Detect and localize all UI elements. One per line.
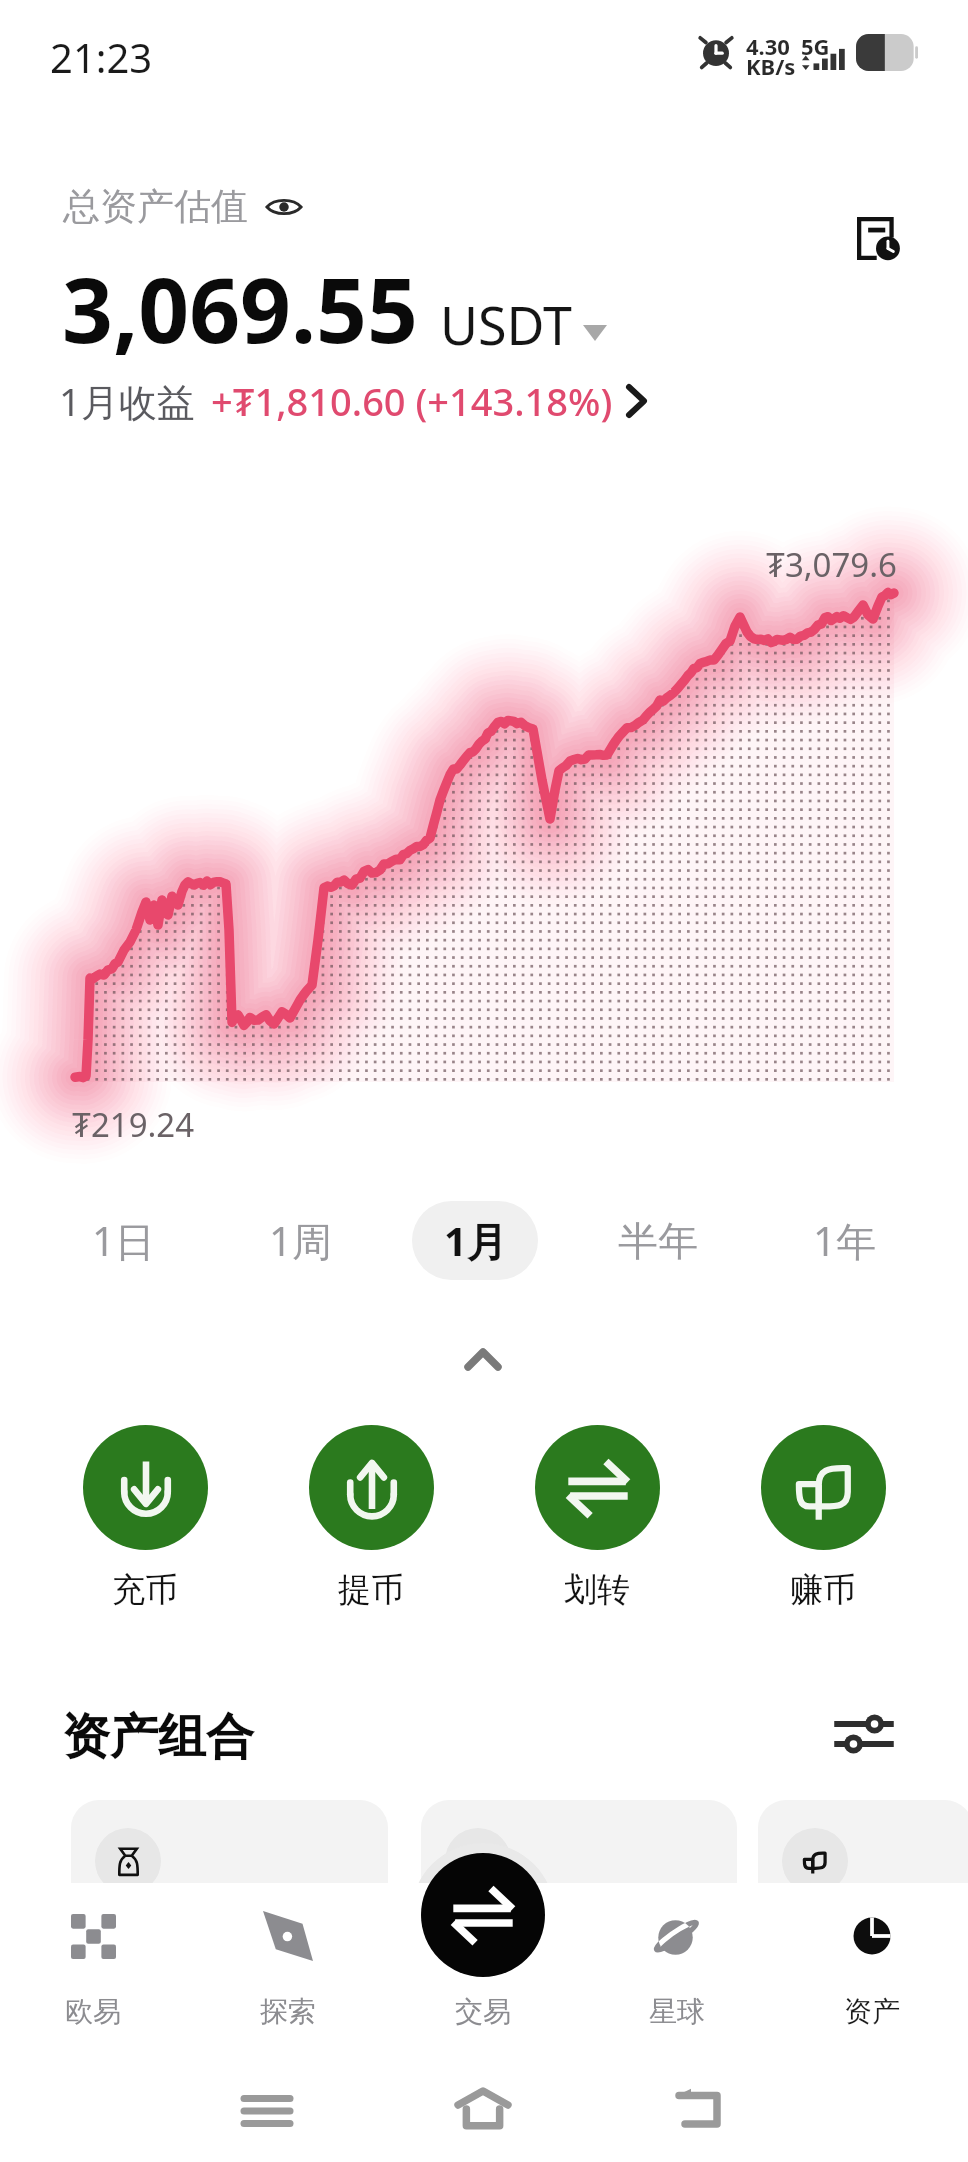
staticText: 半年 (618, 1216, 698, 1266)
staticText: 1年 (813, 1213, 876, 1268)
staticText: 3,069.55 (62, 248, 418, 369)
button[interactable]: 星球 (597, 1907, 757, 2031)
staticText: ₮219.24 (72, 1102, 195, 1147)
staticText: 1月收益 (59, 375, 195, 427)
staticText: 欧易 (65, 1994, 121, 2029)
button[interactable] (71, 1800, 388, 1980)
button[interactable]: 1月收益 (59, 375, 646, 427)
staticText: ₮3,079.6 (766, 542, 897, 587)
button[interactable]: 交易 (403, 1907, 563, 2031)
staticText: KB/s (746, 51, 796, 81)
button[interactable]: 欧易 (13, 1907, 173, 2031)
staticText: 1日 (92, 1213, 155, 1268)
staticText: 提币 (338, 1569, 404, 1611)
other: Toggle balance visibility (264, 187, 304, 227)
button[interactable]: Back (668, 2078, 730, 2140)
button[interactable]: 半年 (598, 1201, 718, 1280)
button[interactable] (758, 1800, 968, 1980)
staticText: USDT (440, 289, 572, 360)
staticText: 5G (801, 31, 830, 61)
staticText: 探索 (260, 1994, 316, 2029)
staticText: 总资产估值 (63, 183, 248, 230)
button[interactable]: 赚币 (751, 1418, 895, 1611)
staticText: 资产组合 (62, 1707, 254, 1767)
staticText: 划转 (564, 1569, 630, 1611)
staticText: 1周 (269, 1213, 332, 1268)
button[interactable]: 充币 (73, 1418, 217, 1611)
button[interactable]: Home (452, 2078, 514, 2140)
button[interactable]: Trade (421, 1853, 545, 1977)
button[interactable]: 划转 (525, 1418, 669, 1611)
button[interactable]: USDT (418, 289, 607, 360)
staticText: 资产 (844, 1994, 900, 2029)
staticText: 21:23 (50, 30, 153, 84)
staticText: 1月 (444, 1213, 507, 1268)
staticText: 星球 (649, 1994, 705, 2029)
button[interactable]: Recent apps (236, 2080, 298, 2142)
button[interactable]: 1月 (412, 1201, 538, 1280)
button[interactable] (421, 1800, 737, 1980)
button[interactable]: 资产 (792, 1907, 952, 2031)
button[interactable]: 探索 (208, 1907, 368, 2031)
button[interactable]: 总资产估值 (63, 183, 304, 230)
button[interactable]: Collapse chart (443, 1326, 523, 1392)
staticText: +₮1,810.60 (+143.18%) (211, 375, 613, 427)
button[interactable]: 1年 (784, 1201, 904, 1280)
button[interactable]: 1周 (240, 1201, 360, 1280)
staticText: 充币 (112, 1569, 178, 1611)
button[interactable]: 1日 (63, 1201, 183, 1280)
staticText: 赚币 (790, 1569, 856, 1611)
staticText: 4.30 (746, 31, 790, 61)
button[interactable]: 提币 (299, 1418, 443, 1611)
staticText: 交易 (455, 1994, 511, 2029)
button[interactable]: Transaction history (844, 204, 913, 273)
button[interactable]: Filter assets (828, 1698, 900, 1770)
